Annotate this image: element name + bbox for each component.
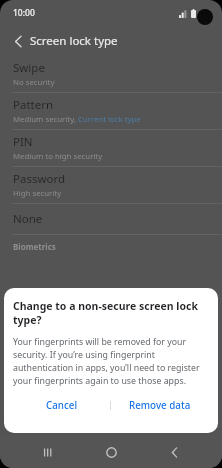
staticText: Cancel [46,399,78,412]
staticText: Medium to high security [13,151,103,162]
staticText: Pattern [13,97,54,113]
staticText: No security [13,77,55,88]
staticText: Remove data [129,399,191,412]
staticText: Swipe [13,60,45,76]
staticText: High security [13,188,62,199]
staticText: PIN [13,134,33,150]
button[interactable]: Recents [38,442,58,462]
staticText: Your fingerprints will be removed for yo… [13,336,209,386]
staticText: 10:00 [13,7,35,19]
button[interactable]: PIN [0,130,222,166]
button[interactable]: Navigate up [9,32,27,50]
button[interactable]: Back [164,442,184,462]
staticText: Change to a non-secure screen lock type? [13,299,209,327]
button[interactable]: Home [100,441,122,463]
staticText: Password [13,171,66,187]
button[interactable]: Swipe [0,56,222,92]
staticText: Medium security, Current lock type [13,114,141,125]
button[interactable]: Remove data [111,394,209,416]
button[interactable]: Password [0,167,222,203]
staticText: None [13,211,43,227]
button[interactable]: Pattern [0,93,222,129]
button[interactable]: None [0,204,222,234]
staticText: Biometrics [13,241,56,252]
staticText: Screen lock type [30,33,118,49]
button[interactable]: Cancel [13,394,110,416]
